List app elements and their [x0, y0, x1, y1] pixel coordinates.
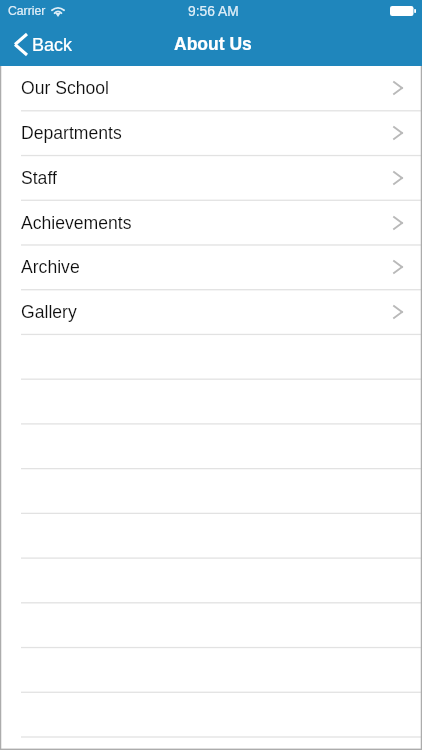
staticText: Carrier — [8, 4, 46, 18]
staticText: Back — [32, 35, 73, 55]
other: Wi-Fi — [51, 7, 65, 17]
button[interactable]: Departments — [0, 111, 422, 155]
button[interactable]: Archive — [0, 245, 422, 289]
staticText: 9:56 AM — [188, 4, 239, 19]
button[interactable]: Our School — [0, 66, 422, 110]
staticText: Our School — [21, 78, 110, 98]
staticText: Staff — [21, 168, 57, 188]
button[interactable]: Gallery — [0, 290, 422, 334]
other: Battery — [390, 6, 416, 16]
staticText: Archive — [21, 257, 80, 277]
staticText: About Us — [174, 34, 252, 54]
staticText: Achievements — [21, 213, 132, 233]
staticText: Departments — [21, 123, 122, 143]
staticText: Gallery — [21, 302, 77, 322]
button[interactable]: Back — [0, 29, 85, 60]
button[interactable]: Achievements — [0, 201, 422, 245]
button[interactable]: Staff — [0, 156, 422, 200]
